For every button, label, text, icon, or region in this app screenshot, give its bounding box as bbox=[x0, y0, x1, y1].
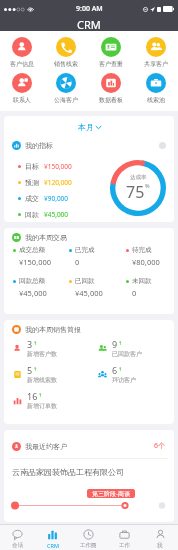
staticText: 16 bbox=[27, 390, 38, 402]
staticText: 已回款客户 bbox=[112, 350, 142, 358]
staticText: ↑ bbox=[118, 340, 123, 346]
staticText: 达成率 bbox=[130, 174, 147, 181]
button[interactable]: 我 bbox=[142, 527, 178, 550]
button[interactable]: 客户信息 bbox=[0, 37, 44, 73]
staticText: CRM bbox=[77, 17, 101, 31]
staticText: 会话 bbox=[12, 542, 23, 549]
staticText: ¥45,000 bbox=[44, 210, 69, 219]
staticText: 公海客户 bbox=[54, 96, 78, 104]
staticText: ¥45,000 bbox=[19, 288, 47, 298]
staticText: ¥150,000 bbox=[44, 162, 72, 171]
staticText: 数据看板 bbox=[99, 96, 123, 104]
button[interactable]: CRM bbox=[35, 527, 70, 550]
staticText: 9:00 AM bbox=[76, 4, 103, 14]
staticText: 客户查重 bbox=[99, 60, 123, 68]
staticText: 未回款 bbox=[132, 277, 152, 285]
staticText: 工作圈 bbox=[80, 542, 97, 549]
staticText: ¥80,000 bbox=[132, 257, 160, 267]
staticText: 本月 bbox=[78, 122, 94, 132]
staticText: 共享客户 bbox=[144, 60, 168, 68]
button[interactable]: 联系人 bbox=[0, 73, 44, 109]
button[interactable]: 工作 bbox=[106, 527, 142, 550]
staticText: 0 bbox=[75, 257, 80, 267]
staticText: 3 bbox=[27, 338, 33, 350]
button[interactable]: 共享客户 bbox=[133, 37, 178, 73]
staticText: CRM bbox=[47, 542, 59, 549]
staticText: 已完成 bbox=[75, 246, 95, 254]
staticText: % bbox=[145, 182, 150, 189]
staticText: 我 bbox=[157, 542, 163, 549]
staticText: 成交 bbox=[25, 194, 39, 203]
button[interactable]: 线索池 bbox=[133, 73, 178, 109]
staticText: 我的指标 bbox=[25, 141, 53, 150]
staticText: 目标 bbox=[25, 162, 39, 171]
staticText: ¥120,000 bbox=[44, 178, 72, 187]
button[interactable]: 客户查重 bbox=[88, 37, 133, 73]
staticText: 我最近约客户 bbox=[25, 442, 67, 451]
staticText: 回款 bbox=[25, 210, 39, 219]
staticText: 75 bbox=[126, 181, 145, 203]
staticText: 待完成 bbox=[132, 246, 152, 254]
staticText: 第三阶段-商谈 bbox=[92, 490, 130, 497]
staticText: 拜访客户 bbox=[112, 376, 136, 384]
staticText: 已回款 bbox=[75, 277, 95, 285]
staticText: 9 bbox=[112, 338, 118, 350]
staticText: ↑ bbox=[33, 340, 38, 346]
button[interactable]: 销售线索 bbox=[44, 37, 88, 73]
staticText: ↑ bbox=[38, 392, 43, 398]
staticText: 新增客户数 bbox=[27, 350, 57, 358]
staticText: 成交总额 bbox=[19, 246, 45, 254]
staticText: 客户信息 bbox=[10, 60, 34, 68]
staticText: 联系人 bbox=[13, 96, 31, 104]
staticText: 云南品家园装饰品工程有限公司 bbox=[12, 467, 124, 477]
staticText: ↑ bbox=[33, 366, 38, 372]
staticText: ¥45,000 bbox=[75, 288, 103, 298]
staticText: ↑ bbox=[118, 366, 123, 372]
staticText: 回款总额 bbox=[19, 277, 45, 285]
button[interactable]: 本月 bbox=[4, 116, 174, 137]
staticText: 新增订单数 bbox=[27, 402, 57, 410]
staticText: 新增线索数 bbox=[27, 376, 57, 384]
staticText: 0 bbox=[132, 288, 137, 298]
button[interactable]: 数据看板 bbox=[88, 73, 133, 109]
button[interactable]: 会话 bbox=[0, 527, 35, 550]
staticText: ¥90,000 bbox=[44, 194, 69, 203]
staticText: 线索池 bbox=[147, 96, 165, 104]
staticText: 6个 bbox=[154, 441, 166, 451]
staticText: 销售线索 bbox=[54, 60, 78, 68]
staticText: 6 bbox=[112, 364, 118, 376]
staticText: ¥150,000 bbox=[19, 257, 52, 267]
other: Refresh bbox=[159, 142, 166, 149]
button[interactable]: 工作圈 bbox=[70, 527, 106, 550]
staticText: 预测 bbox=[25, 178, 39, 187]
staticText: 我的本周交易 bbox=[25, 233, 67, 242]
staticText: 5 bbox=[27, 364, 33, 376]
button[interactable]: 公海客户 bbox=[44, 73, 88, 109]
staticText: 我的本周销售简报 bbox=[25, 325, 81, 334]
staticText: 工作 bbox=[119, 542, 130, 549]
